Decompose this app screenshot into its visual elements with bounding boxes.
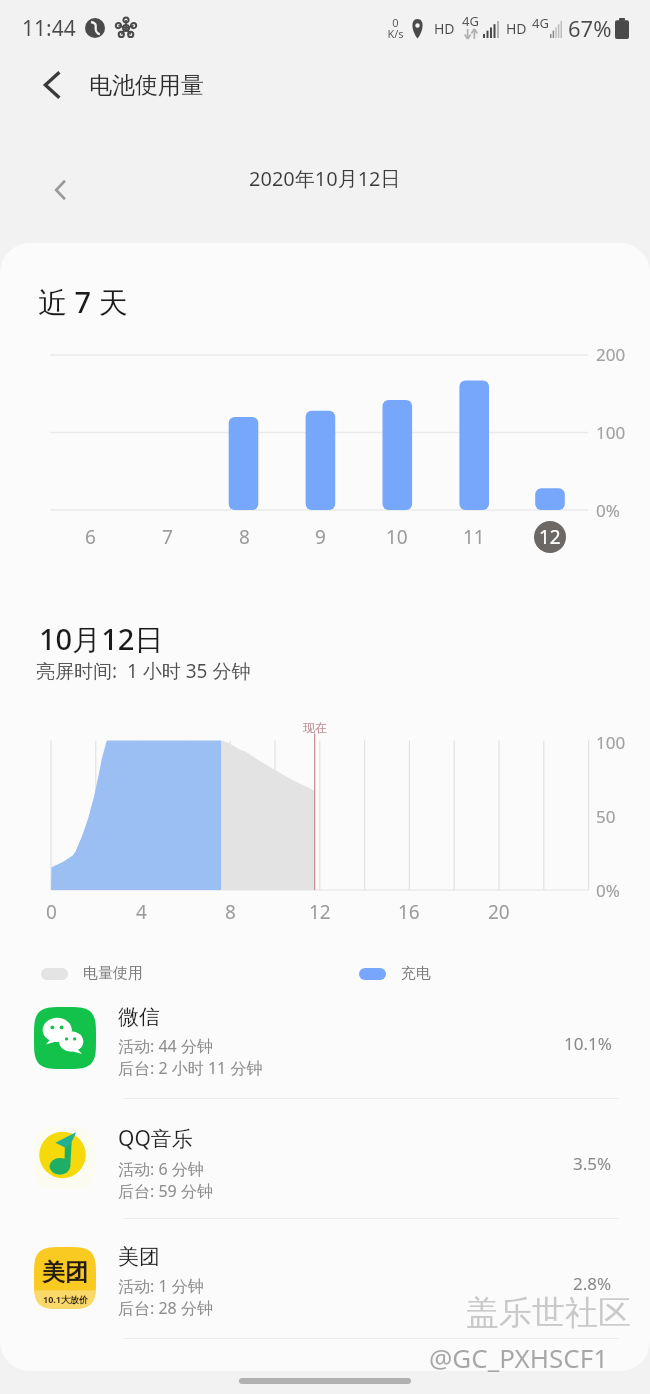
- staticText: 11: [463, 524, 485, 550]
- staticText: 后台: 59 分钟: [118, 1180, 213, 1202]
- staticText: 美团: [42, 1258, 88, 1287]
- button[interactable]: 微信: [0, 979, 650, 1099]
- staticText: 后台: 28 分钟: [118, 1297, 213, 1319]
- button[interactable]: Previous day: [38, 167, 84, 213]
- staticText: 100: [596, 731, 626, 754]
- staticText: 盖乐世社区: [466, 1292, 631, 1334]
- staticText: 4G: [462, 12, 479, 30]
- staticText: 200: [596, 343, 626, 366]
- staticText: 11:44: [22, 14, 76, 43]
- staticText: 活动: 6 分钟: [118, 1158, 204, 1180]
- staticText: 50: [596, 805, 616, 828]
- staticText: 充电: [401, 964, 431, 983]
- staticText: 10.1大放价: [43, 1293, 88, 1305]
- staticText: 12: [539, 524, 561, 550]
- staticText: 6: [85, 524, 96, 550]
- staticText: 9: [315, 524, 326, 550]
- button[interactable]: QQ音乐: [0, 1099, 650, 1219]
- staticText: 0: [46, 899, 57, 925]
- staticText: @GC_PXHSCF1: [429, 1340, 609, 1375]
- staticText: 2.8%: [573, 1272, 612, 1295]
- button[interactable]: 电量使用: [30, 955, 143, 991]
- staticText: 4: [136, 899, 147, 925]
- staticText: 4G: [532, 14, 549, 32]
- button[interactable]: Back: [22, 56, 84, 118]
- staticText: 电池使用量: [89, 71, 204, 100]
- staticText: 0 K/s: [387, 15, 404, 42]
- staticText: 8: [239, 524, 250, 550]
- staticText: 20: [488, 899, 510, 925]
- staticText: 亮屏时间: 1 小时 35 分钟: [36, 658, 251, 684]
- staticText: HD: [434, 19, 455, 38]
- staticText: 现在: [303, 720, 327, 735]
- staticText: 活动: 44 分钟: [118, 1035, 213, 1057]
- staticText: 16: [398, 899, 420, 925]
- staticText: HD: [506, 19, 527, 38]
- staticText: 0%: [596, 879, 620, 902]
- staticText: 0%: [596, 499, 620, 522]
- staticText: 10月12日: [39, 619, 164, 659]
- staticText: 7: [162, 524, 173, 550]
- staticText: 12: [309, 899, 331, 925]
- staticText: 10: [386, 524, 408, 550]
- button[interactable]: 美团: [0, 1219, 650, 1339]
- staticText: 近 7 天: [38, 282, 128, 322]
- staticText: 10.1%: [564, 1032, 612, 1055]
- staticText: 67%: [568, 13, 612, 43]
- staticText: 微信: [118, 1004, 160, 1030]
- staticText: 2020年10月12日: [249, 165, 401, 192]
- staticText: 电量使用: [83, 964, 143, 983]
- staticText: 3.5%: [573, 1152, 612, 1175]
- button[interactable]: 充电: [349, 955, 431, 991]
- staticText: QQ音乐: [118, 1124, 193, 1153]
- staticText: 后台: 2 小时 11 分钟: [118, 1057, 263, 1079]
- staticText: 100: [596, 421, 626, 444]
- staticText: 活动: 1 分钟: [118, 1275, 204, 1297]
- staticText: 8: [225, 899, 236, 925]
- staticText: 美团: [118, 1244, 160, 1270]
